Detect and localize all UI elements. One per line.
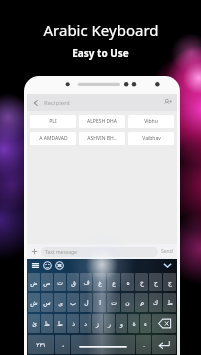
staticText: ك	[153, 299, 158, 306]
staticText: Vaibhav	[142, 135, 161, 142]
staticText: ط	[167, 299, 173, 306]
staticText: ط	[57, 320, 63, 327]
button[interactable]: ر	[104, 314, 115, 333]
button[interactable]: ج	[163, 273, 176, 291]
staticText: Text message	[45, 249, 77, 256]
button[interactable]: ق	[67, 273, 79, 291]
button[interactable]: ك	[149, 293, 162, 312]
button[interactable]: Settings	[55, 261, 64, 270]
button[interactable]: ز	[92, 314, 103, 333]
staticText: ف	[83, 279, 90, 286]
button[interactable]: A AMDAVAD	[30, 132, 76, 145]
staticText: ASHVIN BH...	[87, 135, 118, 142]
staticText: ج	[168, 279, 172, 286]
button[interactable]: ض	[28, 273, 40, 291]
button[interactable]: ص	[41, 273, 53, 291]
staticText: ذ	[72, 320, 75, 327]
staticText: ALPESH DHA	[87, 118, 117, 125]
staticText: ز	[96, 320, 99, 327]
staticText: س	[43, 299, 51, 306]
button[interactable]: ث	[54, 273, 66, 291]
button[interactable]: Back	[31, 98, 41, 108]
button[interactable]: غ	[93, 273, 106, 291]
staticText: ل	[84, 299, 89, 306]
staticText: ت	[111, 299, 117, 306]
staticText: ا	[99, 299, 101, 306]
button[interactable]: Back	[27, 94, 177, 111]
button[interactable]: ش	[28, 293, 40, 312]
staticText: خ	[140, 279, 144, 286]
button[interactable]: ع	[107, 273, 120, 291]
button[interactable]: ي	[54, 293, 66, 312]
button[interactable]: د	[80, 314, 91, 333]
button[interactable]: ف	[80, 273, 92, 291]
button[interactable]: Backspace	[152, 314, 176, 333]
button[interactable]: Attach	[27, 244, 177, 259]
button[interactable]: Space	[71, 335, 135, 354]
staticText: ن	[125, 299, 130, 306]
staticText: و	[120, 320, 123, 327]
staticText: ء	[144, 320, 147, 327]
staticText: غ	[98, 279, 102, 286]
button[interactable]: Menu	[31, 261, 40, 270]
staticText: A AMDAVAD	[39, 135, 68, 142]
button[interactable]: ٢٣١	[28, 335, 54, 354]
staticText: ث	[57, 279, 63, 286]
staticText: Send	[161, 248, 173, 255]
staticText: ح	[154, 279, 158, 286]
staticText: ع	[112, 279, 116, 286]
button[interactable]: م	[135, 293, 148, 312]
button[interactable]: Hide keyboard	[162, 260, 173, 271]
button[interactable]: ALPESH DHA	[79, 115, 125, 128]
button[interactable]: Add contact	[162, 97, 173, 108]
button[interactable]: ظ	[41, 314, 53, 333]
button[interactable]: ه	[121, 273, 134, 291]
staticText: Easy to Use	[72, 46, 129, 60]
staticText: ه	[126, 279, 130, 286]
button[interactable]: ط	[163, 293, 176, 312]
staticText: Vibhu	[144, 118, 158, 125]
staticText: Recipient	[44, 99, 71, 107]
button[interactable]: Attach	[30, 247, 39, 256]
staticText: ش	[30, 299, 38, 306]
staticText: د	[84, 320, 87, 327]
button[interactable]: ء	[140, 314, 151, 333]
button[interactable]: ASHVIN BH...	[79, 132, 125, 145]
staticText: ،	[62, 341, 64, 348]
button[interactable]: ا	[93, 293, 106, 312]
button[interactable]: .	[136, 335, 151, 354]
button[interactable]: ن	[121, 293, 134, 312]
staticText: ظ	[44, 320, 50, 327]
staticText: ض	[30, 279, 38, 286]
button[interactable]: س	[41, 293, 53, 312]
button[interactable]: ح	[149, 273, 162, 291]
button[interactable]: ئ	[28, 314, 40, 333]
staticText: ٢٣١	[36, 341, 46, 348]
button[interactable]: Send	[160, 248, 174, 255]
button[interactable]: و	[116, 314, 127, 333]
button[interactable]: Emoji	[43, 261, 52, 270]
button[interactable]: ب	[67, 293, 79, 312]
button[interactable]: Vaibhav	[128, 132, 174, 145]
button[interactable]: Enter	[152, 335, 176, 354]
staticText: ئ	[32, 320, 37, 327]
staticText: م	[140, 299, 144, 306]
staticText: ب	[70, 299, 76, 306]
staticText: ق	[71, 279, 76, 286]
button[interactable]: ل	[80, 293, 92, 312]
staticText: Arabic Keyboard	[43, 20, 159, 40]
button[interactable]: PLI	[30, 115, 76, 128]
staticText: ص	[43, 279, 51, 286]
button[interactable]: ذ	[67, 314, 79, 333]
button[interactable]: ،	[55, 335, 70, 354]
button[interactable]: ة	[128, 314, 139, 333]
staticText: ة	[132, 320, 136, 327]
staticText: ر	[108, 320, 111, 327]
button[interactable]: ط	[54, 314, 66, 333]
staticText: ي	[58, 299, 63, 306]
button[interactable]: ت	[107, 293, 120, 312]
button[interactable]: Vibhu	[128, 115, 174, 128]
staticText: PLI	[49, 118, 57, 125]
staticText: .	[143, 341, 145, 349]
button[interactable]: خ	[135, 273, 148, 291]
